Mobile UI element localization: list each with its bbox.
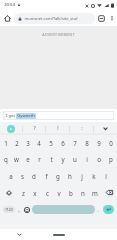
staticText: o	[97, 155, 101, 163]
button[interactable]: 1	[0, 135, 11, 150]
staticText: a	[9, 172, 13, 180]
button[interactable]: n	[77, 184, 89, 201]
button[interactable]: Back	[0, 229, 39, 240]
button[interactable]: mumsnet.com/Talk/site_stuf	[14, 13, 95, 24]
staticText: h	[68, 172, 72, 180]
staticText: e	[26, 155, 30, 163]
staticText: 3	[26, 139, 30, 147]
button[interactable]: Emoji	[22, 201, 32, 218]
button[interactable]: 3	[22, 135, 33, 150]
staticText: x	[33, 189, 37, 197]
button[interactable]: ?	[23, 122, 45, 135]
staticText: 1	[4, 139, 8, 147]
staticText: mumsnet.com/Talk/site_stuf	[24, 16, 78, 21]
button[interactable]: Home	[0, 10, 14, 26]
button[interactable]: c	[41, 184, 53, 201]
button[interactable]: 9	[93, 135, 105, 150]
button[interactable]: d	[28, 167, 40, 184]
staticText: p	[109, 155, 113, 163]
staticText: 7	[73, 139, 77, 147]
staticText: 5	[49, 139, 53, 147]
staticText: ?	[33, 125, 36, 132]
button[interactable]: g	[52, 167, 64, 184]
button[interactable]: 0	[105, 135, 117, 150]
button[interactable]: k	[88, 167, 100, 184]
staticText: 0	[109, 139, 113, 147]
button[interactable]: w	[11, 150, 22, 167]
staticText: 2	[15, 139, 19, 147]
button[interactable]: x	[29, 184, 41, 201]
button[interactable]: e	[22, 150, 33, 167]
button[interactable]: i	[81, 150, 93, 167]
button[interactable]: Space	[32, 205, 95, 214]
button[interactable]: r	[33, 150, 45, 167]
staticText: b	[69, 189, 73, 197]
button[interactable]: Shift	[0, 184, 17, 201]
staticText: j	[81, 172, 83, 180]
button[interactable]: p	[105, 150, 117, 167]
button[interactable]: z	[17, 184, 29, 201]
button[interactable]: l	[100, 167, 112, 184]
button[interactable]: More options	[107, 10, 117, 26]
button[interactable]: Assistant	[0, 122, 22, 135]
button[interactable]: v	[53, 184, 65, 201]
button[interactable]: 5	[45, 135, 57, 150]
button[interactable]: 4	[33, 135, 45, 150]
staticText: d	[32, 172, 36, 180]
button[interactable]: Enter	[101, 201, 115, 218]
staticText: !	[57, 125, 59, 132]
staticText: Gywneth	[17, 113, 35, 119]
button[interactable]: Backspace	[101, 184, 117, 201]
button[interactable]: !	[46, 122, 69, 135]
button[interactable]: Tabs	[95, 10, 107, 26]
button[interactable]: 8	[81, 135, 93, 150]
button[interactable]: b	[65, 184, 77, 201]
staticText: 8	[85, 139, 89, 147]
staticText: t	[50, 155, 53, 163]
button[interactable]: a	[5, 167, 16, 184]
staticText: .	[97, 206, 99, 213]
button[interactable]: t	[45, 150, 57, 167]
staticText: ?123	[5, 207, 13, 212]
staticText: i	[86, 155, 88, 163]
button[interactable]: Home	[39, 229, 78, 240]
button[interactable]: h	[64, 167, 76, 184]
staticText: ,	[18, 206, 20, 213]
button[interactable]: 2	[11, 135, 22, 150]
button[interactable]: m	[89, 184, 101, 201]
button[interactable]: y	[57, 150, 69, 167]
staticText: w	[14, 155, 19, 163]
staticText: n	[81, 189, 85, 197]
button[interactable]: o	[93, 150, 105, 167]
button[interactable]: s	[16, 167, 28, 184]
button[interactable]: I got	[3, 111, 114, 120]
staticText: c	[46, 189, 49, 197]
button[interactable]: q	[0, 150, 11, 167]
staticText: g	[56, 172, 60, 180]
button[interactable]: .	[95, 201, 101, 218]
staticText: ADVERTISEMENT	[42, 32, 75, 37]
staticText: f	[45, 172, 48, 180]
button[interactable]: 6	[57, 135, 69, 150]
button[interactable]: :	[70, 122, 93, 135]
staticText: u	[73, 155, 77, 163]
staticText: k	[92, 172, 96, 180]
button[interactable]: Expand suggestions	[94, 122, 117, 135]
staticText: m	[92, 189, 98, 197]
staticText: q	[4, 155, 8, 163]
button[interactable]: f	[40, 167, 52, 184]
button[interactable]: j	[76, 167, 88, 184]
button[interactable]: ,	[16, 201, 22, 218]
staticText: l	[105, 172, 107, 180]
staticText: 4	[37, 139, 41, 147]
staticText: 20:54	[4, 2, 15, 8]
button[interactable]: 7	[69, 135, 81, 150]
staticText: I got	[5, 113, 16, 119]
button[interactable]: u	[69, 150, 81, 167]
button[interactable]: ?123	[2, 201, 16, 218]
staticText: s	[21, 172, 24, 180]
staticText: z	[22, 189, 25, 197]
staticText: 9	[97, 139, 101, 147]
staticText: v	[57, 189, 61, 197]
staticText: r	[38, 155, 41, 163]
